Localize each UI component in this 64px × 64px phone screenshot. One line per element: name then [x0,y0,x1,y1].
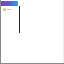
button[interactable] [1,1,18,6]
button[interactable]: Avatar [3,8,6,11]
